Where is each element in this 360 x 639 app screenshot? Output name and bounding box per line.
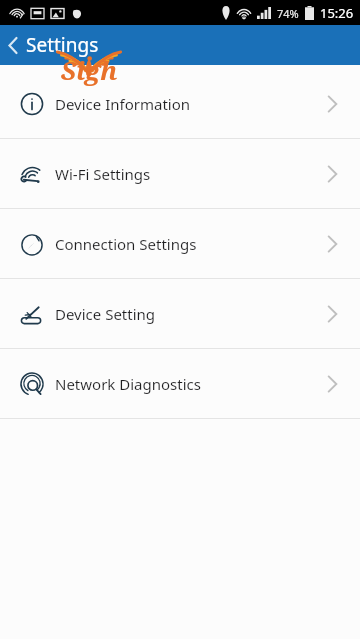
staticText: Sight — [56, 52, 122, 98]
staticText: Connection Settings — [55, 234, 197, 254]
button[interactable]: Back — [0, 25, 111, 65]
button[interactable]: Device Information — [0, 69, 360, 138]
staticText: Settings — [26, 32, 99, 58]
button[interactable]: Connection Settings — [0, 209, 360, 278]
staticText: Device Information — [55, 94, 191, 114]
staticText: Wi-Fi Settings — [55, 164, 151, 184]
staticText: 74% — [277, 6, 299, 21]
staticText: Network Diagnostics — [55, 374, 201, 394]
button[interactable]: Network Diagnostics — [0, 349, 360, 418]
other: Back — [8, 37, 18, 54]
button[interactable]: Device Setting — [0, 279, 360, 348]
staticText: 15:26 — [320, 4, 354, 22]
button[interactable]: Wi-Fi Settings — [0, 139, 360, 208]
staticText: Device Setting — [55, 304, 156, 324]
